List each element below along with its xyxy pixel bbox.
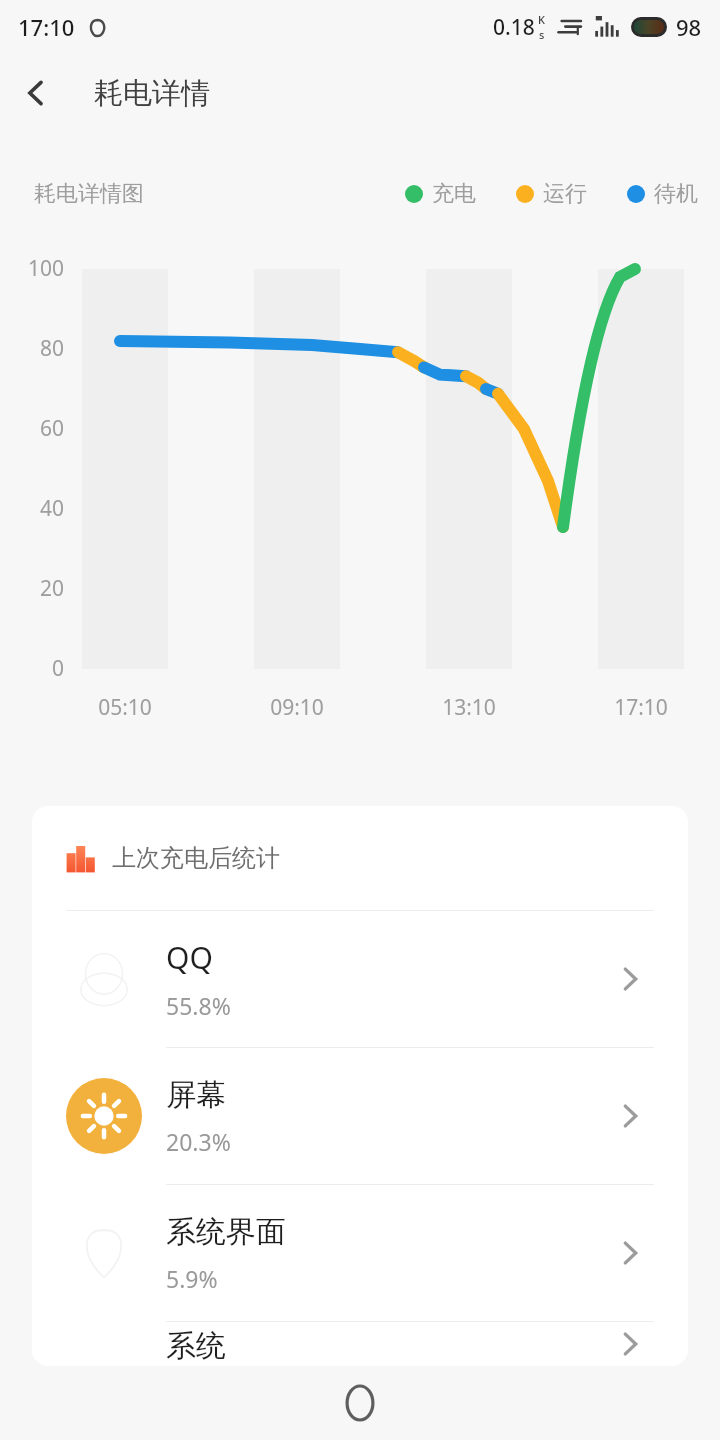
button[interactable]: 屏幕	[32, 1048, 688, 1184]
button[interactable]: Home	[332, 1375, 388, 1431]
staticText: s	[539, 27, 545, 42]
button[interactable]: 运行	[516, 180, 587, 208]
staticText: 运行	[543, 180, 587, 208]
staticText: 20	[0, 574, 64, 603]
staticText: 13:10	[422, 693, 516, 722]
staticText: 充电	[432, 180, 476, 208]
staticText: 17:10	[594, 693, 688, 722]
staticText: 上次充电后统计	[112, 843, 280, 873]
other: Open 系统	[602, 1322, 658, 1366]
button[interactable]: QQ	[32, 911, 688, 1047]
other: Open 屏幕	[602, 1088, 658, 1144]
staticText: 屏幕	[166, 1076, 226, 1114]
staticText: QQ	[166, 937, 213, 978]
staticText: 5.9%	[166, 1263, 218, 1294]
staticText: 耗电详情图	[34, 180, 144, 208]
button[interactable]: Back	[0, 57, 72, 129]
staticText: 09:10	[250, 693, 344, 722]
staticText: 55.8%	[166, 990, 231, 1021]
staticText: 100	[0, 254, 64, 283]
staticText: 20.3%	[166, 1126, 231, 1157]
staticText: 98	[676, 12, 702, 42]
other: Open QQ	[602, 951, 658, 1007]
staticText: 系统界面	[166, 1213, 286, 1251]
other: Open 系统界面	[602, 1225, 658, 1281]
staticText: 17:10	[18, 12, 75, 42]
staticText: 80	[0, 334, 64, 363]
staticText: K	[538, 12, 545, 27]
staticText: 系统	[166, 1324, 256, 1365]
staticText: 60	[0, 414, 64, 443]
button[interactable]: 系统	[32, 1322, 688, 1366]
staticText: 0	[0, 654, 64, 683]
staticText: 待机	[654, 180, 698, 208]
staticText: 40	[0, 494, 64, 523]
staticText: 05:10	[78, 693, 172, 722]
button[interactable]: 待机	[627, 180, 698, 208]
staticText: 耗电详情	[94, 75, 210, 112]
button[interactable]: 充电	[405, 180, 476, 208]
button[interactable]: 系统界面	[32, 1185, 688, 1321]
staticText: 0.18	[493, 13, 535, 42]
